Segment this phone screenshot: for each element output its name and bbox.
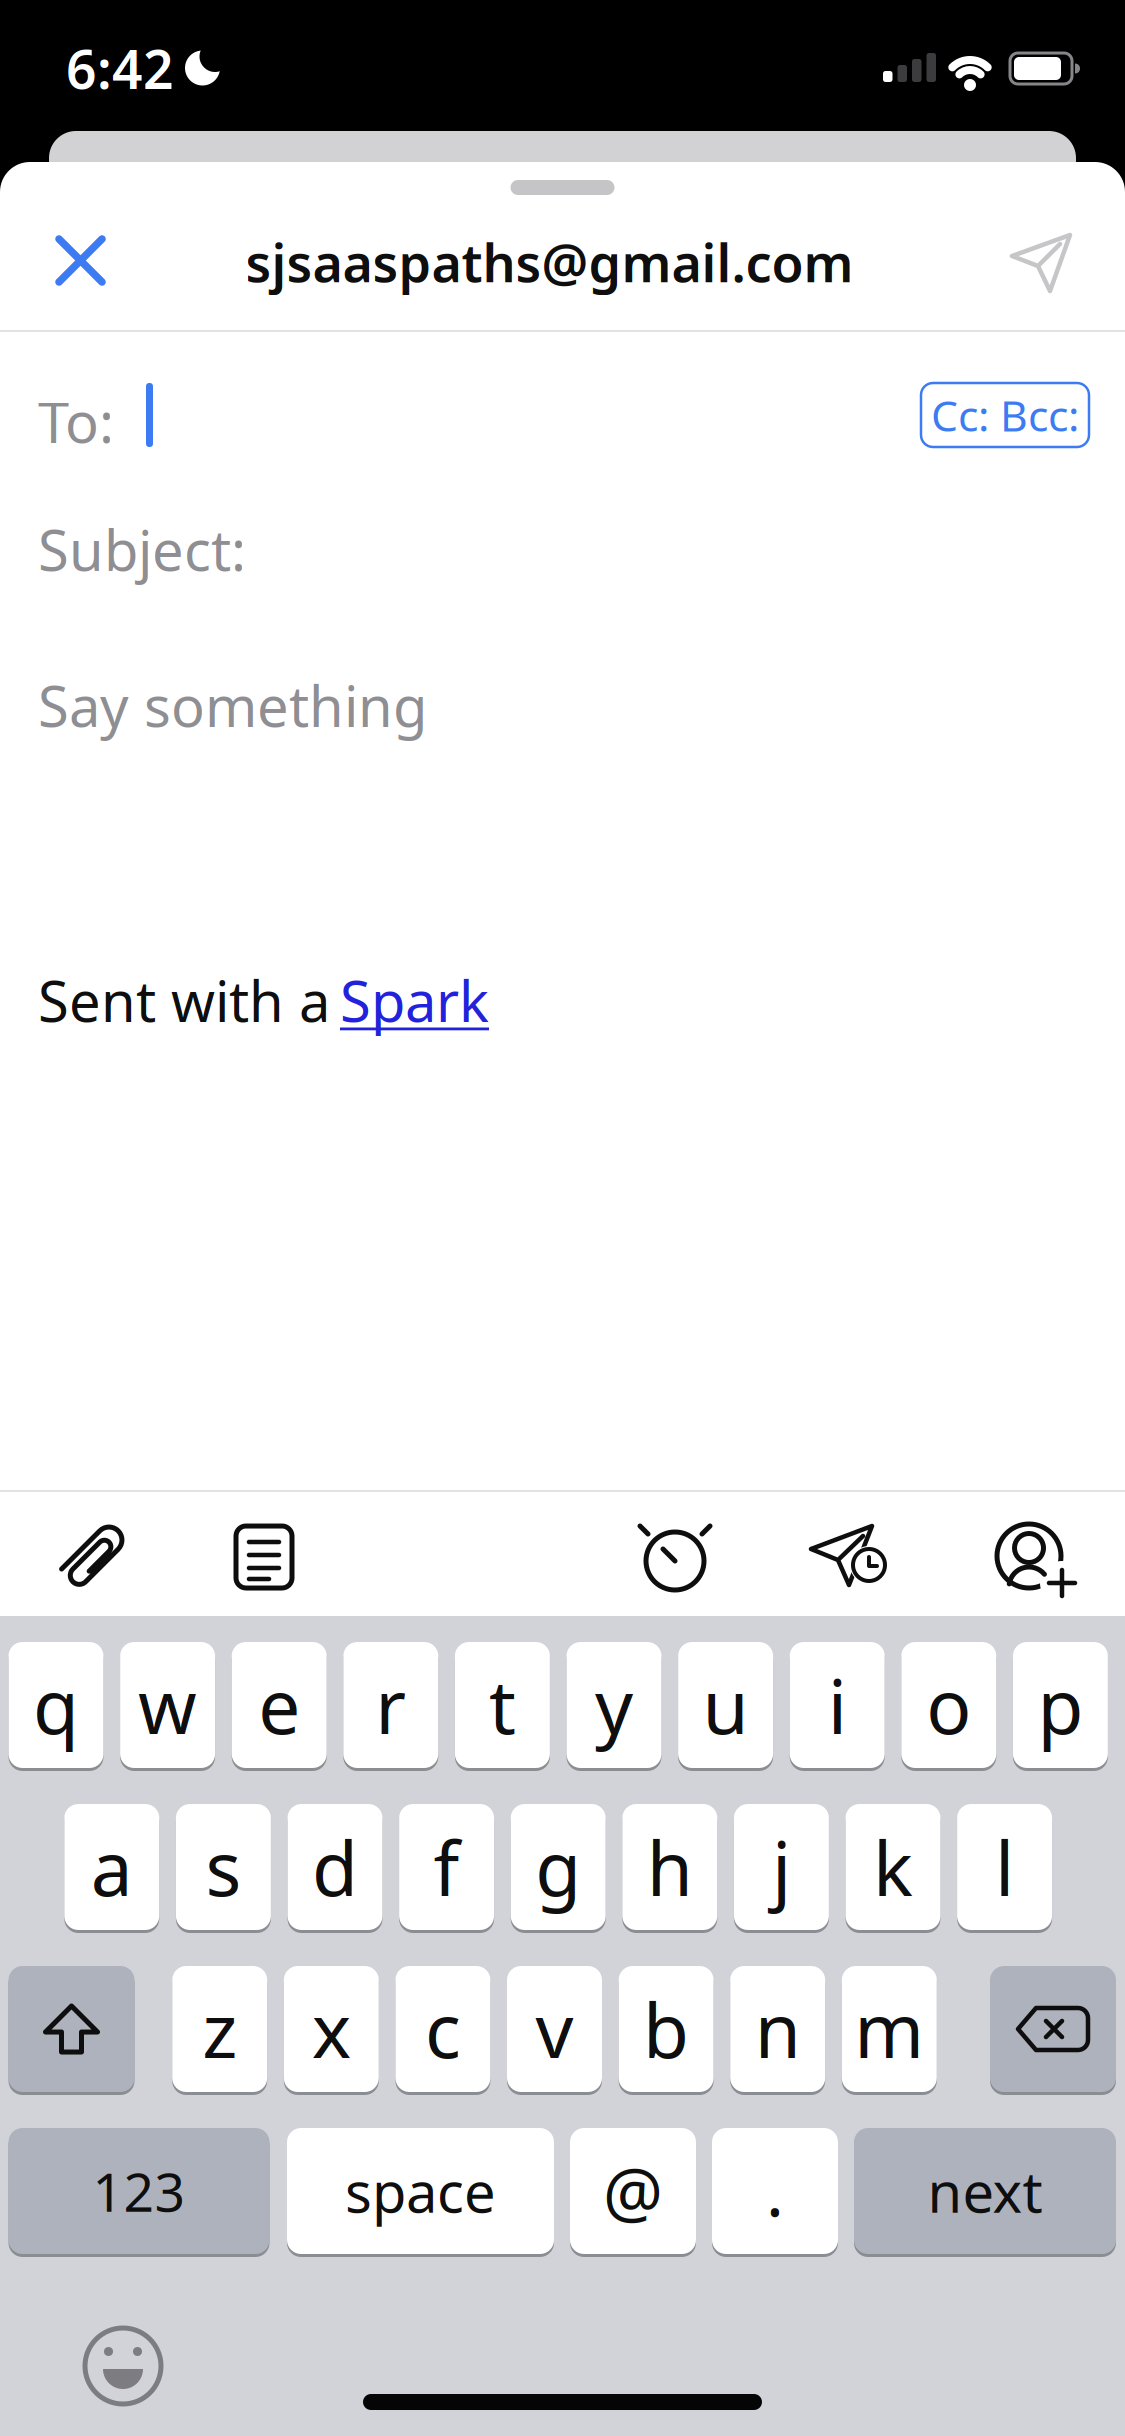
staticText: j: [772, 1817, 791, 1917]
staticText: d: [312, 1817, 358, 1917]
button[interactable]: Templates: [233, 1523, 295, 1591]
staticText: b: [643, 1979, 689, 2079]
staticText: Spark: [340, 963, 489, 1037]
staticText: n: [755, 1979, 801, 2079]
button[interactable]: k: [845, 1804, 940, 1930]
button[interactable]: p: [1013, 1642, 1108, 1768]
staticText: z: [202, 1979, 237, 2079]
staticText: k: [873, 1817, 913, 1917]
staticText: s: [205, 1817, 241, 1917]
staticText: a: [91, 1817, 133, 1917]
button[interactable]: l: [957, 1804, 1052, 1930]
button[interactable]: t: [455, 1642, 550, 1768]
button[interactable]: i: [790, 1642, 885, 1768]
button[interactable]: r: [343, 1642, 438, 1768]
staticText: next: [927, 2154, 1042, 2228]
staticText: To:: [38, 384, 114, 458]
staticText: m: [854, 1979, 924, 2079]
staticText: t: [489, 1655, 516, 1755]
staticText: Say something: [38, 668, 427, 742]
staticText: Sent with a: [38, 963, 330, 1037]
button[interactable]: o: [901, 1642, 996, 1768]
staticText: o: [926, 1655, 971, 1755]
button[interactable]: s: [176, 1804, 271, 1930]
button[interactable]: Close: [51, 231, 110, 290]
staticText: Subject:: [38, 512, 246, 586]
button[interactable]: Delete: [990, 1966, 1116, 2092]
staticText: r: [375, 1655, 406, 1755]
staticText: .: [766, 2147, 784, 2235]
button[interactable]: h: [622, 1804, 717, 1930]
button[interactable]: y: [566, 1642, 661, 1768]
button[interactable]: space: [287, 2128, 554, 2254]
button[interactable]: g: [511, 1804, 606, 1930]
staticText: l: [995, 1817, 1014, 1917]
staticText: v: [535, 1979, 573, 2079]
button[interactable]: a: [64, 1804, 159, 1930]
button[interactable]: Send later: [808, 1522, 886, 1594]
button[interactable]: n: [730, 1966, 825, 2092]
staticText: h: [647, 1817, 693, 1917]
button[interactable]: Attach file: [52, 1517, 132, 1597]
staticText: y: [595, 1655, 633, 1755]
button[interactable]: next: [854, 2128, 1116, 2254]
button[interactable]: Add contact: [992, 1521, 1068, 1595]
button[interactable]: x: [284, 1966, 379, 2092]
button[interactable]: v: [507, 1966, 602, 2092]
staticText: @: [603, 2147, 663, 2235]
button[interactable]: Shift: [8, 1966, 134, 2092]
staticText: x: [312, 1979, 351, 2079]
button[interactable]: w: [120, 1642, 215, 1768]
button[interactable]: z: [172, 1966, 267, 2092]
button[interactable]: d: [287, 1804, 382, 1930]
staticText: f: [434, 1817, 460, 1917]
staticText: w: [138, 1655, 197, 1755]
button[interactable]: b: [619, 1966, 714, 2092]
button[interactable]: Send: [1008, 230, 1074, 294]
staticText: p: [1037, 1655, 1083, 1755]
staticText: Cc: Bcc:: [931, 387, 1079, 443]
staticText: space: [345, 2154, 496, 2228]
staticText: q: [33, 1655, 79, 1755]
staticText: c: [425, 1979, 461, 2079]
staticText: i: [828, 1655, 847, 1755]
staticText: u: [703, 1655, 749, 1755]
staticText: g: [535, 1817, 581, 1917]
staticText: 123: [92, 2156, 185, 2226]
button[interactable]: @: [570, 2128, 696, 2254]
button[interactable]: q: [8, 1642, 103, 1768]
staticText: 6:42: [66, 33, 174, 104]
button[interactable]: Reminder: [637, 1521, 713, 1595]
staticText: e: [258, 1655, 300, 1755]
button[interactable]: c: [395, 1966, 490, 2092]
button[interactable]: f: [399, 1804, 494, 1930]
button[interactable]: m: [842, 1966, 937, 2092]
button[interactable]: j: [734, 1804, 829, 1930]
button[interactable]: e: [232, 1642, 327, 1768]
button[interactable]: Cc: Bcc:: [921, 383, 1089, 447]
button[interactable]: u: [678, 1642, 773, 1768]
staticText: sjsaaspaths@gmail.com: [245, 227, 853, 297]
button[interactable]: Emoji: [82, 2325, 164, 2407]
button[interactable]: 123: [8, 2128, 269, 2254]
button[interactable]: .: [712, 2128, 838, 2254]
button[interactable]: Spark: [340, 963, 489, 1037]
